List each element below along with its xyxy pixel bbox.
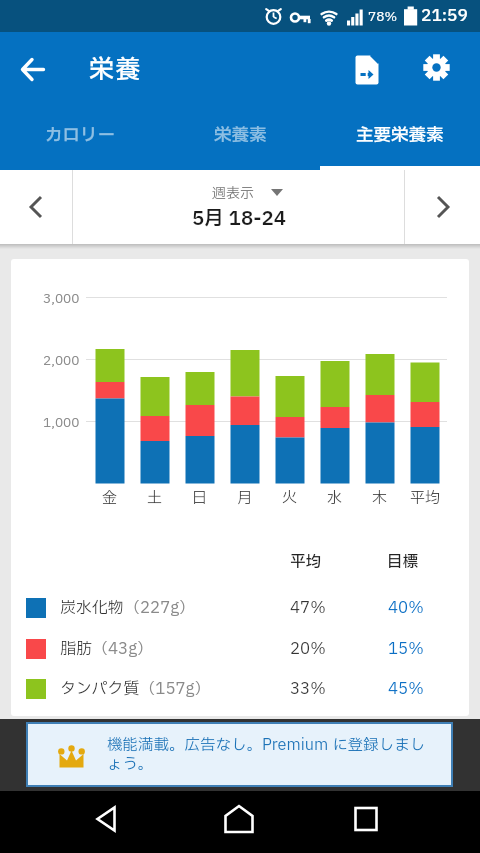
button[interactable]: 主要栄養素 [320, 100, 480, 170]
staticText: 土 [147, 487, 163, 509]
staticText: 2,000 [43, 351, 80, 370]
staticText: 月 [237, 487, 253, 509]
staticText: 火 [282, 487, 298, 509]
staticText: 47% [290, 596, 326, 620]
staticText: 炭水化物（227g） [60, 596, 196, 620]
staticText: 45% [388, 677, 424, 701]
staticText: タンパク質（157g） [60, 677, 211, 701]
staticText: 目標 [387, 551, 419, 574]
button[interactable] [0, 170, 72, 244]
staticText: 21:59 [421, 4, 468, 29]
staticText: 5月 18-24 [192, 204, 286, 233]
staticText: 機能満載。広告なし。Premium に登録しまし ょう。 [107, 734, 425, 776]
staticText: 水 [327, 487, 343, 509]
staticText: 栄養素 [214, 122, 267, 148]
staticText: 40% [388, 596, 424, 620]
button[interactable] [342, 795, 390, 843]
staticText: 1,000 [43, 413, 80, 432]
staticText: 主要栄養素 [356, 122, 444, 148]
staticText: 平均 [410, 487, 441, 509]
button[interactable] [82, 795, 130, 843]
staticText: 日 [192, 487, 208, 509]
staticText: 33% [290, 677, 326, 701]
button[interactable] [10, 46, 58, 94]
staticText: 3,000 [43, 289, 80, 308]
button[interactable]: 栄養素 [160, 100, 320, 170]
staticText: 木 [372, 487, 388, 509]
button[interactable]: カロリー [0, 100, 160, 170]
staticText: 栄養 [89, 52, 143, 89]
staticText: 脂肪（43g） [60, 637, 154, 661]
staticText: 週表示 [212, 183, 254, 204]
button[interactable] [405, 170, 480, 244]
button[interactable]: 週表示 [73, 170, 404, 244]
staticText: 15% [388, 637, 424, 661]
staticText: 金 [102, 487, 118, 509]
button[interactable] [215, 795, 263, 843]
staticText: 平均 [290, 551, 322, 574]
button[interactable] [343, 43, 391, 91]
button[interactable]: 機能満載。広告なし。Premium に登録しまし ょう。 [26, 722, 453, 787]
button[interactable] [412, 43, 460, 91]
staticText: カロリー [45, 122, 115, 148]
staticText: 20% [290, 637, 326, 661]
staticText: 78% [368, 7, 398, 26]
